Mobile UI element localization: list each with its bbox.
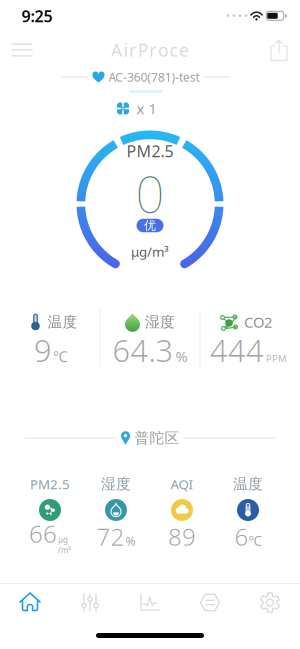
staticText: AQI (170, 475, 193, 493)
staticText: 6 (234, 521, 248, 552)
staticText: PPM (266, 352, 286, 364)
staticText: PM2.5 (126, 140, 173, 162)
staticText: 优 (144, 218, 156, 233)
staticText: 89 (168, 521, 196, 552)
staticText: 9 (34, 330, 52, 370)
staticText: CO2 (244, 312, 272, 332)
staticText: 0 (135, 159, 164, 227)
button[interactable]: Controls (61, 582, 119, 622)
staticText: x 1 (136, 99, 156, 118)
staticText: 普陀区 (134, 429, 179, 447)
button[interactable]: History (121, 582, 179, 622)
staticText: 64.3 (112, 330, 173, 370)
staticText: 72 (96, 521, 124, 552)
staticText: 湿度 (145, 313, 175, 331)
staticText: 温度 (47, 313, 77, 331)
button[interactable]: Menu (5, 33, 39, 67)
staticText: ℃ (248, 532, 261, 549)
staticText: 9:25 (21, 5, 52, 27)
staticText: 湿度 (101, 475, 131, 493)
staticText: PM2.5 (30, 475, 70, 493)
staticText: % (175, 346, 187, 366)
button[interactable]: Fan speed 1 (115, 99, 156, 118)
button[interactable]: Settings (241, 582, 299, 622)
staticText: % (125, 533, 135, 549)
staticText: μg/m³ (131, 243, 169, 260)
staticText: AC-360(781)-test (108, 69, 199, 85)
staticText: 66 (29, 517, 57, 549)
staticText: /m³ (58, 545, 71, 555)
button[interactable]: Filter (181, 582, 239, 622)
staticText: 温度 (233, 475, 263, 493)
button[interactable]: 普陀区 (24, 429, 275, 447)
staticText: AirProce (111, 38, 189, 61)
button[interactable]: Air quality: excellent (136, 219, 163, 232)
staticText: 444 (210, 330, 264, 370)
button[interactable]: Share (0, 0, 300, 649)
button[interactable]: Home (1, 582, 59, 622)
button[interactable]: AC-360(781)-test (61, 69, 230, 85)
staticText: μg (58, 534, 68, 545)
staticText: ℃ (53, 346, 68, 366)
